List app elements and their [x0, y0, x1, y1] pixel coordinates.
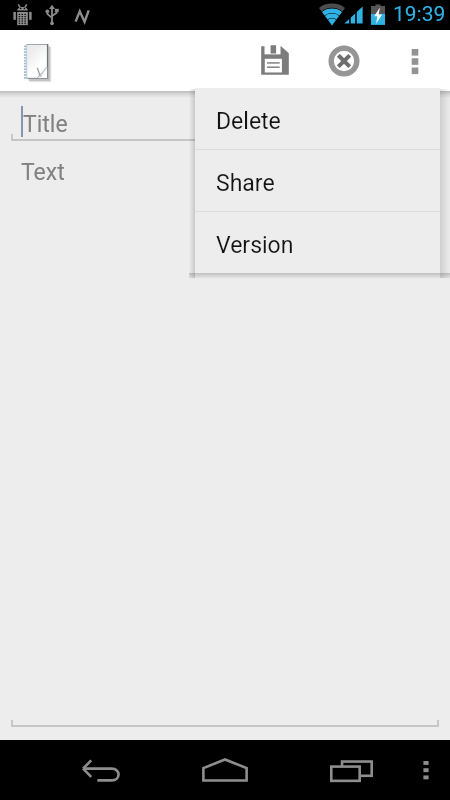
staticText: Version — [216, 232, 294, 259]
staticText: Title — [23, 111, 68, 138]
staticText: 19:39 — [393, 2, 446, 27]
button[interactable]: Recent apps — [311, 740, 391, 800]
button[interactable]: Cancel — [310, 30, 378, 91]
button[interactable]: Save — [241, 30, 309, 91]
button[interactable]: Up — [8, 34, 62, 88]
button[interactable]: Menu — [406, 740, 446, 800]
button[interactable]: Home — [185, 740, 265, 800]
button[interactable]: Delete — [195, 88, 440, 149]
button[interactable]: Text — [0, 143, 450, 730]
button[interactable]: More options — [387, 30, 443, 91]
button[interactable]: Share — [195, 150, 440, 211]
staticText: Delete — [216, 108, 281, 135]
button[interactable]: Version — [195, 212, 440, 273]
staticText: Share — [216, 170, 275, 197]
button[interactable]: Back — [60, 740, 140, 800]
staticText: Text — [21, 159, 65, 186]
button[interactable]: Title — [0, 91, 450, 141]
